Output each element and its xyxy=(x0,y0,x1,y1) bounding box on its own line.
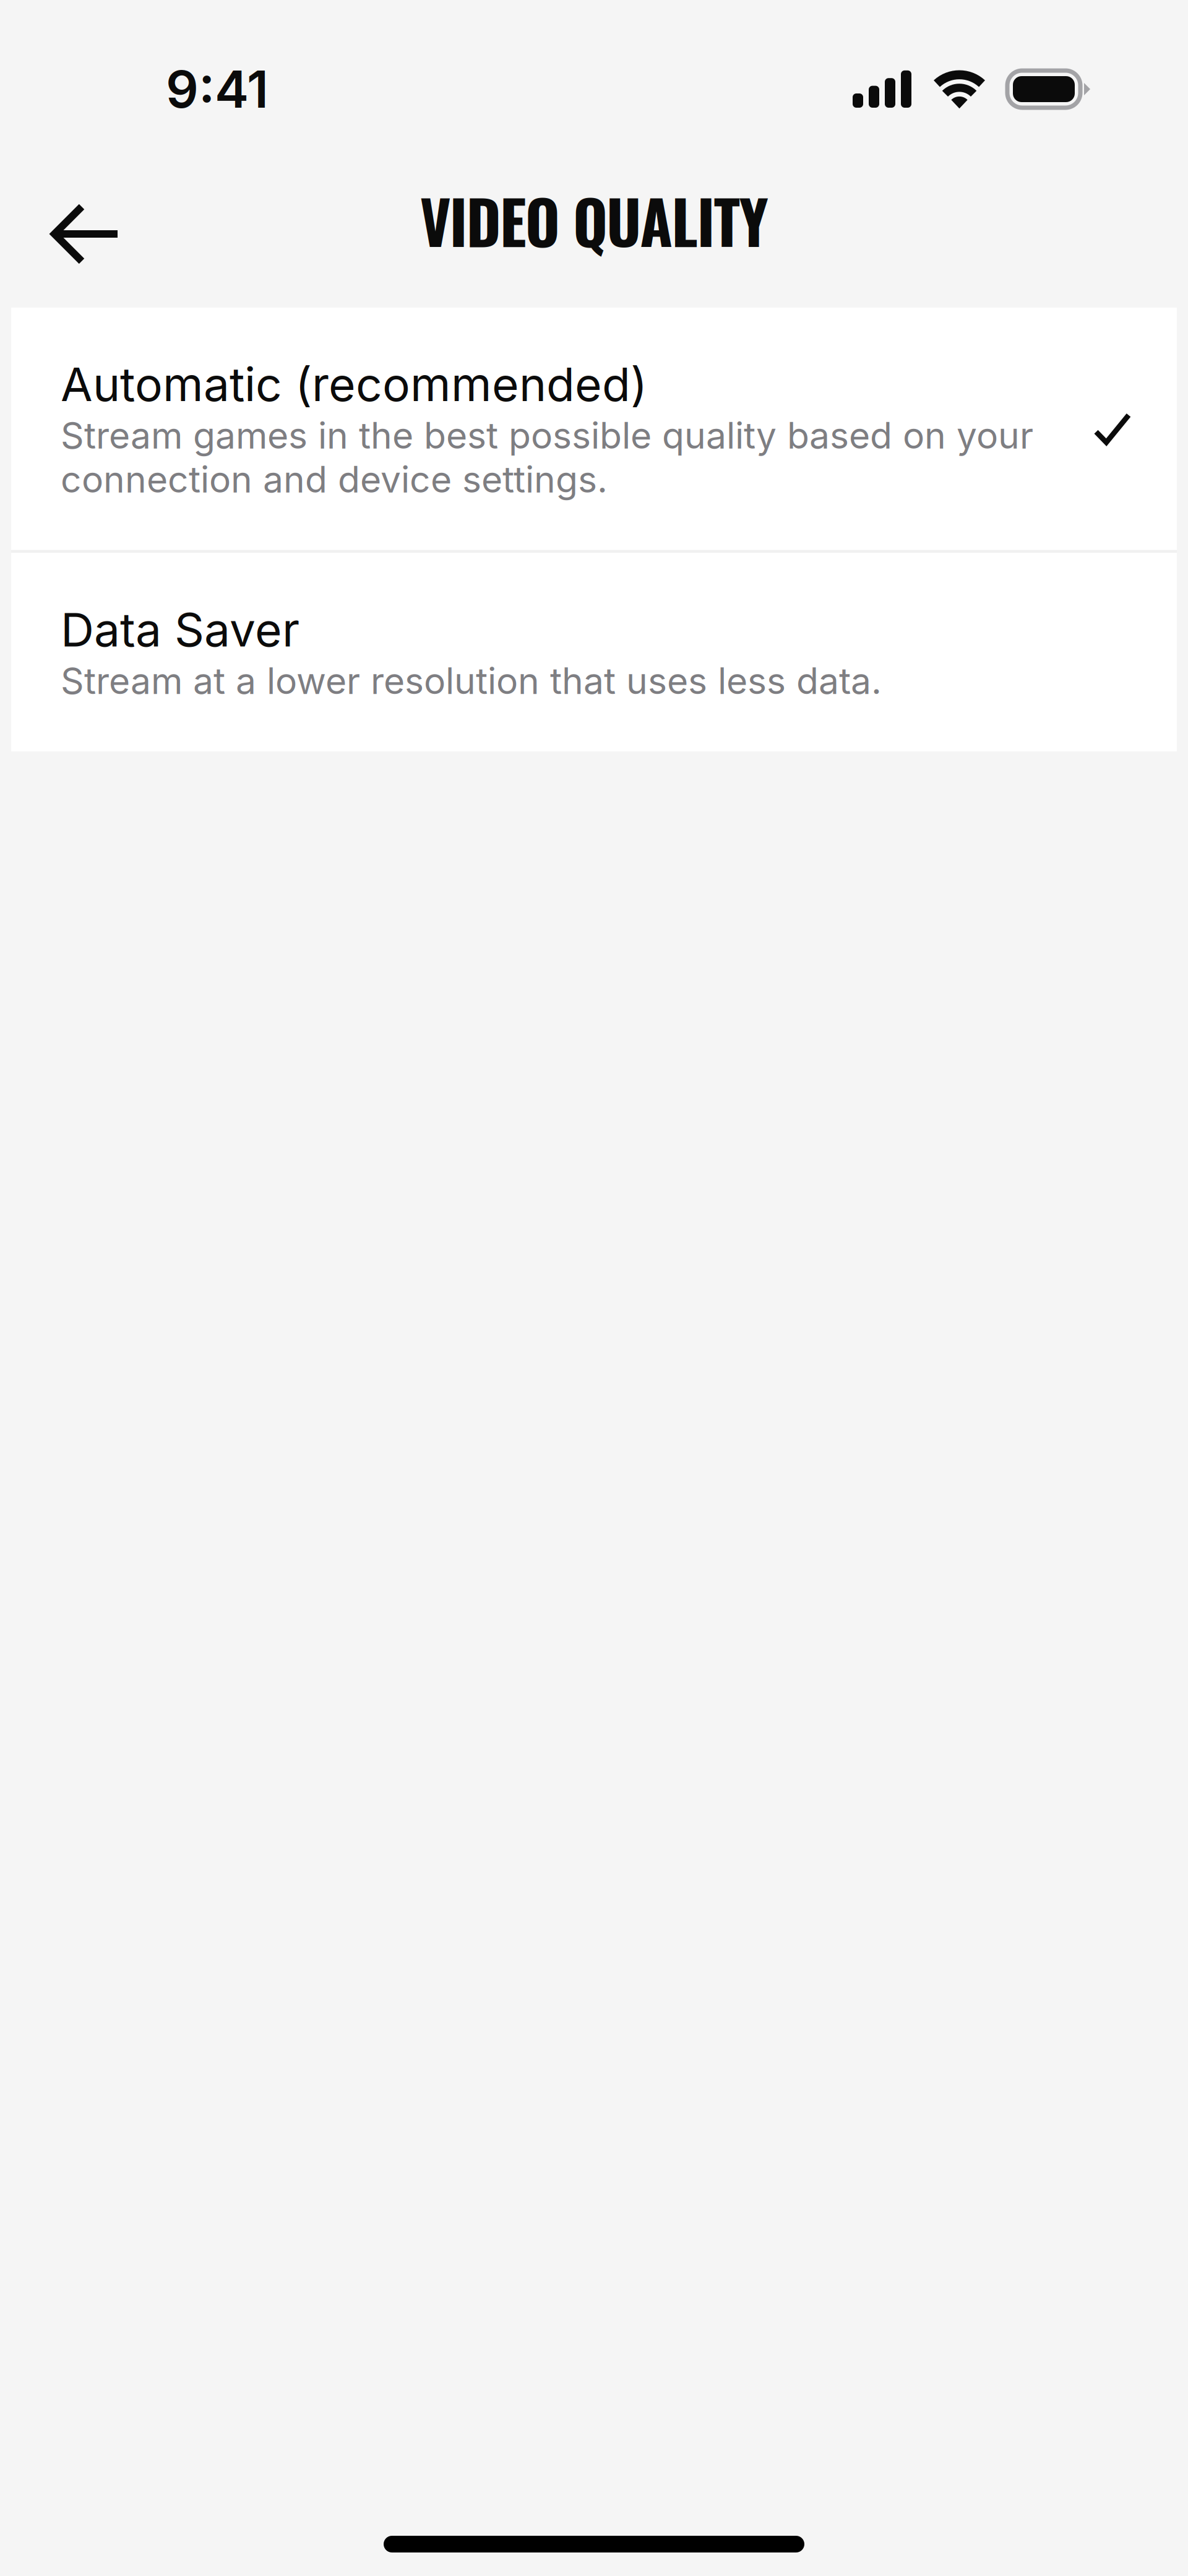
staticText: Data Saver xyxy=(61,602,299,658)
staticText: 9:41 xyxy=(166,58,269,120)
button[interactable]: Back xyxy=(27,169,145,293)
staticText: VIDEO QUALITY xyxy=(420,176,768,264)
staticText: Automatic (recommended) xyxy=(61,356,647,412)
button[interactable]: Automatic (recommended) xyxy=(11,308,1177,550)
staticText: Stream at a lower resolution that uses l… xyxy=(61,659,882,703)
staticText: Stream games in the best possible qualit… xyxy=(61,413,1033,501)
button[interactable]: Data Saver xyxy=(11,553,1177,751)
